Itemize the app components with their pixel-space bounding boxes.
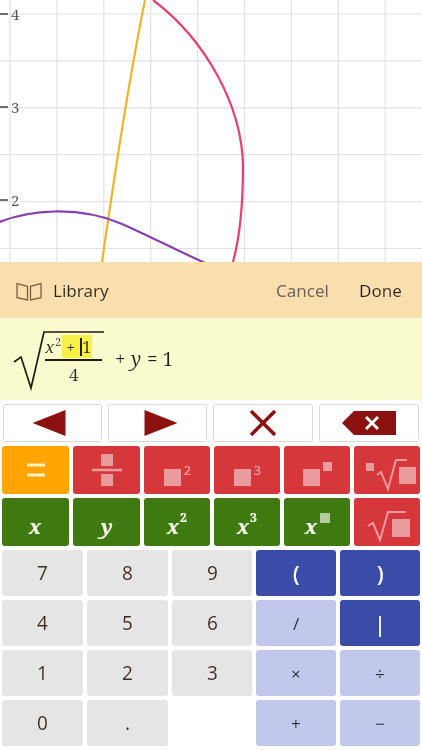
button[interactable]: + <box>256 700 336 746</box>
staticText: y <box>131 346 142 372</box>
button[interactable]: Nth root <box>354 446 420 494</box>
staticText: 2 <box>184 462 191 478</box>
button[interactable]: 0 <box>2 700 83 746</box>
staticText: 5 <box>122 610 133 636</box>
staticText: 2 <box>180 509 187 525</box>
button[interactable]: Cancel <box>268 269 337 312</box>
button[interactable]: 4 <box>2 600 83 646</box>
staticText: x <box>45 335 55 358</box>
button[interactable]: Cube <box>214 446 280 494</box>
staticText: = 1 <box>142 346 174 372</box>
button[interactable]: Done <box>351 269 410 312</box>
button[interactable]: y <box>73 498 140 546</box>
button[interactable]: Clear <box>213 404 313 442</box>
staticText: Cancel <box>276 279 329 302</box>
staticText: x <box>237 513 250 540</box>
button[interactable]: 1 <box>2 650 83 696</box>
staticText: 6 <box>207 610 218 636</box>
button[interactable]: Equals <box>2 446 69 494</box>
staticText: 3 <box>11 97 20 117</box>
staticText: ) <box>377 558 384 588</box>
button[interactable]: x squared <box>144 498 210 546</box>
staticText: 3 <box>254 462 261 478</box>
button[interactable]: ) <box>340 550 420 596</box>
button[interactable]: Move right <box>108 404 207 442</box>
button[interactable]: Power <box>284 446 350 494</box>
button[interactable]: ( <box>256 550 336 596</box>
button[interactable]: − <box>340 700 420 746</box>
staticText: 4 <box>11 4 20 24</box>
button[interactable]: x cubed <box>214 498 280 546</box>
button[interactable]: 8 <box>87 550 168 596</box>
staticText: ÷ <box>375 662 385 685</box>
staticText: / <box>293 612 300 635</box>
button[interactable]: Fraction <box>73 446 140 494</box>
staticText: 9 <box>207 560 218 586</box>
button[interactable]: 6 <box>172 600 252 646</box>
staticText: 0 <box>37 710 48 736</box>
button[interactable]: 3 <box>172 650 252 696</box>
button[interactable]: 9 <box>172 550 252 596</box>
button[interactable]: 2 <box>87 650 168 696</box>
staticText: 8 <box>122 560 133 586</box>
staticText: 2 <box>11 190 20 210</box>
staticText: | <box>374 608 387 638</box>
button[interactable]: × <box>256 650 336 696</box>
button[interactable]: | <box>340 600 420 646</box>
staticText: ( <box>293 558 300 588</box>
staticText: x <box>305 513 318 540</box>
staticText: 7 <box>37 560 48 586</box>
staticText: 3 <box>207 660 218 686</box>
button[interactable]: Move left <box>3 404 102 442</box>
button[interactable]: Square root <box>354 498 420 546</box>
staticText: 2 <box>55 334 62 349</box>
button[interactable]: / <box>256 600 336 646</box>
button[interactable]: Square <box>144 446 210 494</box>
button[interactable]: . <box>87 700 168 746</box>
staticText: 4 <box>69 363 79 386</box>
staticText: 1 <box>37 660 48 686</box>
button[interactable]: x to power <box>284 498 350 546</box>
button[interactable]: x <box>2 498 69 546</box>
staticText: x <box>29 513 42 540</box>
staticText: + <box>291 712 301 735</box>
button[interactable]: Backspace <box>319 404 419 442</box>
button[interactable]: 5 <box>87 600 168 646</box>
staticText: Done <box>359 279 402 302</box>
staticText: x <box>167 513 180 540</box>
button[interactable]: 7 <box>2 550 83 596</box>
staticText: . <box>125 710 131 736</box>
button[interactable]: ÷ <box>340 650 420 696</box>
staticText: Library <box>53 279 109 302</box>
staticText: 3 <box>250 509 257 525</box>
staticText: y <box>101 513 113 540</box>
button[interactable]: x <box>0 318 422 400</box>
staticText: − <box>375 712 385 735</box>
staticText: 1 <box>82 335 92 358</box>
staticText: 4 <box>37 610 48 636</box>
staticText: × <box>291 662 301 685</box>
staticText: 2 <box>122 660 133 686</box>
button[interactable]: Library <box>12 271 113 310</box>
staticText: + <box>115 346 131 372</box>
staticText: + <box>62 336 80 358</box>
